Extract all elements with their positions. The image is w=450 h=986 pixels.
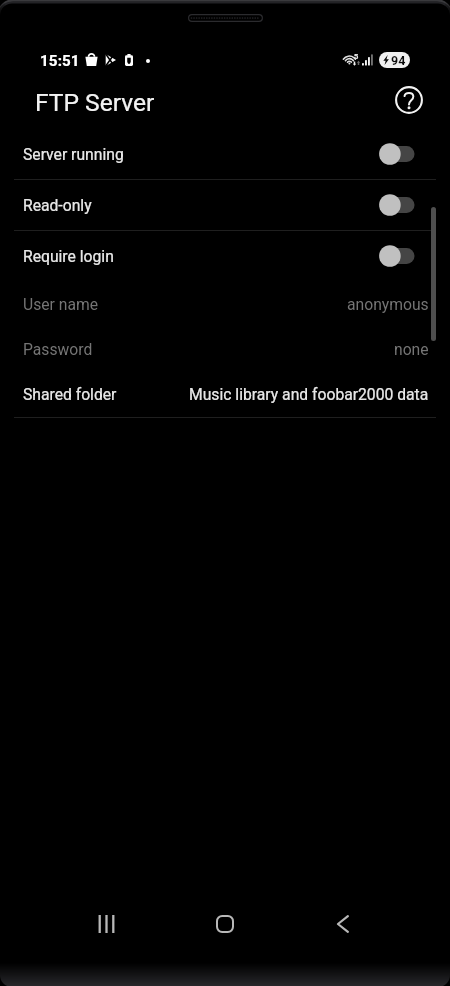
staticText: 15:51 [40, 52, 80, 70]
button[interactable]: Back [319, 901, 367, 947]
staticText: anonymous [347, 295, 429, 313]
staticText: none [394, 340, 429, 358]
staticText: Shared folder [23, 385, 117, 403]
button[interactable]: Home [201, 901, 249, 947]
button[interactable]: Password [0, 326, 450, 371]
button[interactable]: Server running [0, 129, 450, 179]
staticText: Require login [23, 247, 114, 265]
staticText: Read-only [23, 196, 92, 214]
button[interactable]: Read-only [0, 180, 450, 230]
staticText: FTP Server [35, 88, 155, 117]
button[interactable]: Recent apps [82, 901, 130, 947]
staticText: Music library and foobar2000 data [189, 385, 429, 403]
staticText: 94 [391, 53, 406, 68]
button[interactable]: Require login [0, 231, 450, 281]
staticText: 5 [354, 52, 359, 61]
staticText: Server running [23, 145, 124, 163]
staticText: User name [23, 295, 99, 313]
button[interactable]: Shared folder [0, 371, 450, 416]
staticText: Password [23, 340, 93, 358]
button[interactable]: Help [389, 80, 429, 120]
button[interactable]: User name [0, 281, 450, 326]
